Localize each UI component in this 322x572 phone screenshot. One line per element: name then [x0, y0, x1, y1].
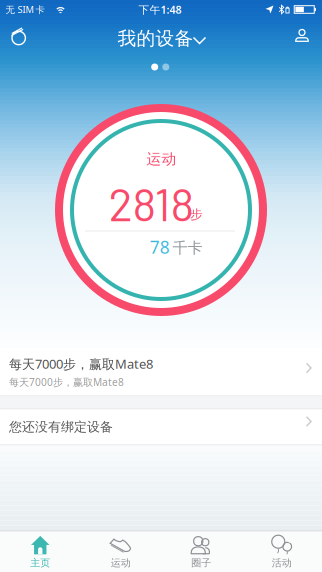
- staticText: 运动: [146, 150, 176, 168]
- staticText: 您还没有绑定设备: [9, 419, 113, 435]
- staticText: 2818: [108, 176, 194, 230]
- button[interactable]: 圈子: [161, 532, 241, 572]
- staticText: 我的设备: [117, 27, 193, 50]
- staticText: 无 SIM 卡: [5, 3, 44, 16]
- button[interactable]: 设备: [7, 26, 29, 48]
- staticText: 步: [190, 206, 203, 222]
- staticText: 活动: [272, 557, 292, 569]
- button[interactable]: 运动: [80, 532, 161, 572]
- button[interactable]: 每天7000步，赢取Mate8: [0, 348, 322, 396]
- button[interactable]: 活动: [241, 532, 322, 572]
- button[interactable]: 我的设备: [108, 26, 218, 52]
- staticText: 每天7000步，赢取Mate8: [9, 355, 153, 373]
- button[interactable]: 主页: [0, 532, 80, 572]
- button[interactable]: 我的: [295, 28, 311, 44]
- staticText: 主页: [30, 557, 50, 569]
- staticText: 每天7000步，赢取Mate8: [9, 375, 124, 389]
- staticText: 千卡: [172, 238, 202, 257]
- staticText: 78: [150, 235, 170, 259]
- staticText: 下午1:48: [138, 2, 181, 17]
- staticText: 圈子: [191, 557, 211, 569]
- button[interactable]: 您还没有绑定设备: [0, 409, 322, 444]
- staticText: 运动: [111, 557, 131, 569]
